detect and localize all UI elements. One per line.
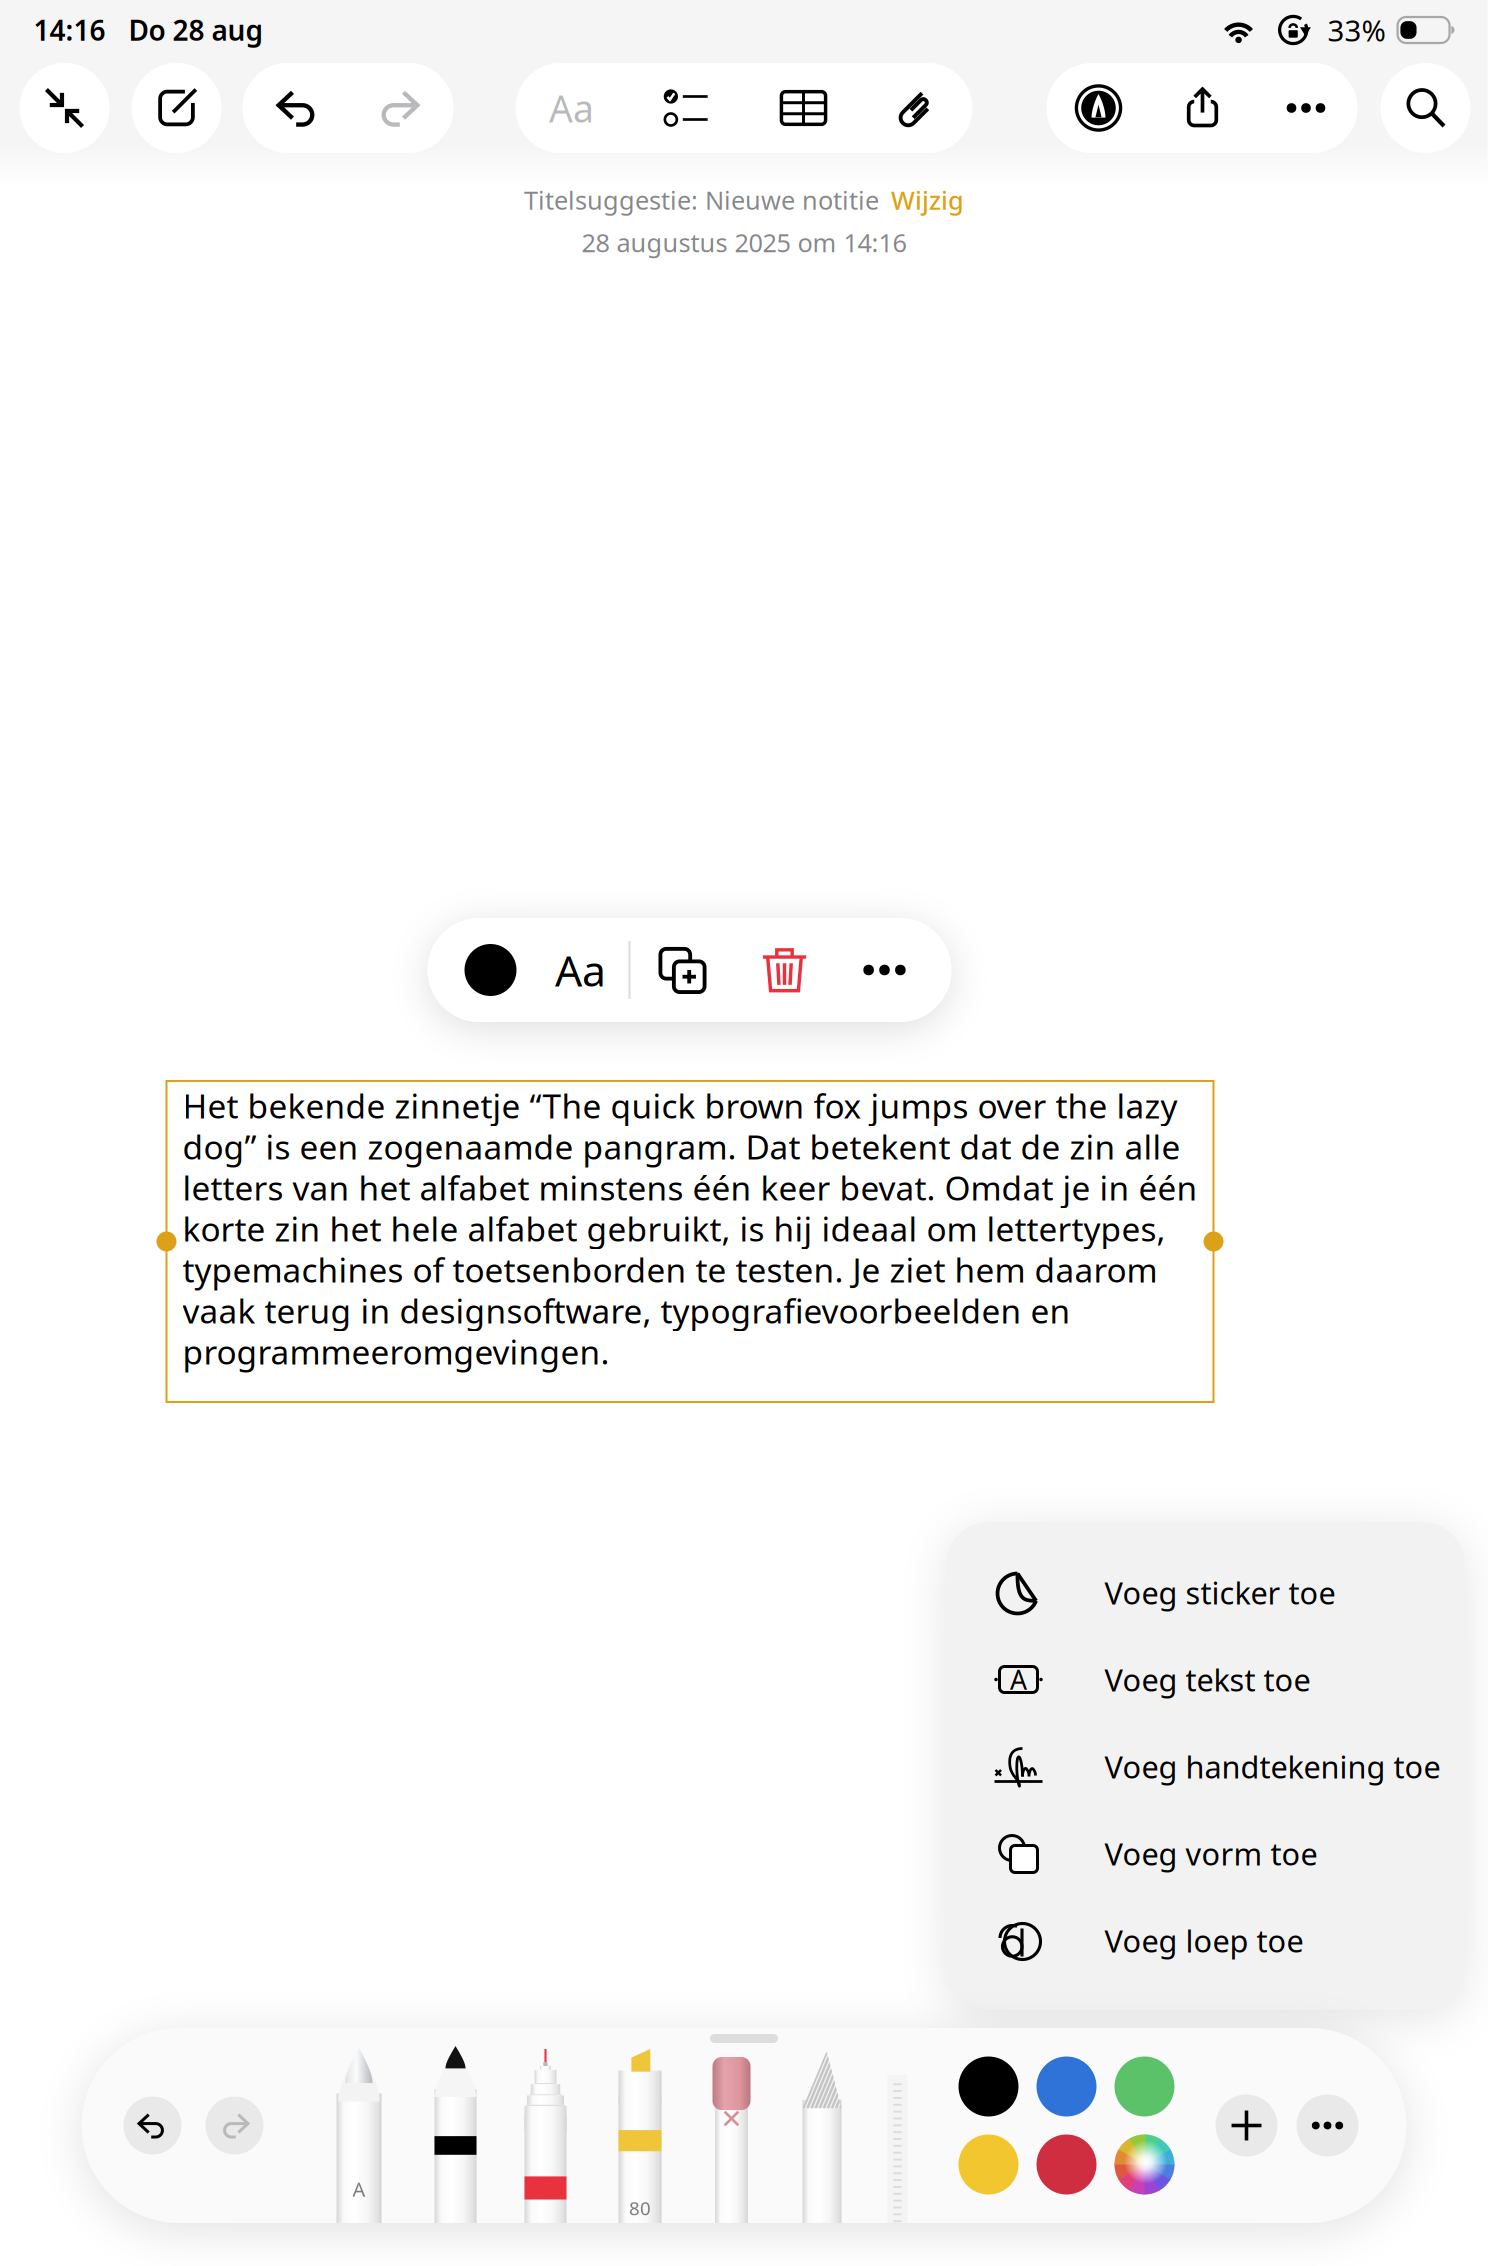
button[interactable]: Fountain pen — [336, 2028, 381, 2242]
button[interactable]: Markup — [1046, 63, 1150, 153]
staticText: Voeg sticker toe — [1104, 1572, 1335, 1613]
staticText: Voeg loep toe — [1104, 1920, 1303, 1961]
button[interactable]: Delete — [734, 918, 834, 1022]
staticText: Het bekende zinnetje “The quick brown fo… — [182, 1083, 1177, 1128]
button[interactable]: Attach — [861, 63, 972, 153]
staticText: Voeg tekst toe — [1104, 1659, 1310, 1700]
staticText: A — [352, 2176, 365, 2202]
button[interactable]: Color — [958, 2056, 1018, 2116]
button[interactable]: Color — [448, 918, 532, 1022]
button[interactable]: Pen — [434, 2028, 476, 2242]
staticText: korte zin het hele alfabet gebruikt, is … — [182, 1206, 1165, 1251]
staticText: Wijzig — [891, 183, 964, 217]
button[interactable]: Add color — [1215, 2094, 1277, 2156]
staticText: dog” is een zogenaamde pangram. Dat bete… — [182, 1124, 1180, 1169]
button[interactable]: Redo — [205, 2096, 263, 2154]
button[interactable]: Color — [1036, 2134, 1096, 2194]
button[interactable]: Crayon — [802, 2028, 841, 2242]
button[interactable]: Color wheel — [1114, 2134, 1174, 2194]
staticText: vaak terug in designsoftware, typografie… — [182, 1288, 1070, 1333]
staticText: Aa — [555, 942, 606, 998]
button[interactable]: New note — [131, 63, 221, 153]
button[interactable]: Duplicate — [630, 918, 734, 1022]
button[interactable]: Search — [1380, 63, 1470, 153]
button[interactable]: A — [946, 1636, 1464, 1723]
button[interactable]: Voeg vorm toe — [946, 1810, 1464, 1897]
button[interactable]: Voeg loep toe — [946, 1897, 1464, 1984]
staticText: 33% — [1328, 10, 1386, 49]
button[interactable]: Undo — [248, 63, 348, 153]
button[interactable]: Voeg sticker toe — [946, 1549, 1464, 1636]
button[interactable]: More — [834, 918, 934, 1022]
staticText: letters van het alfabet minstens één kee… — [182, 1165, 1197, 1210]
button[interactable]: More — [1254, 63, 1357, 153]
staticText: A — [1010, 1662, 1027, 1697]
staticText: 14:16 — [33, 11, 105, 49]
staticText: Titelsuggestie: Nieuwe notitie — [524, 183, 879, 217]
button[interactable]: Eraser — [712, 2028, 750, 2242]
staticText: typemachines of toetsenborden te testen.… — [182, 1247, 1157, 1292]
button[interactable]: Wijzig — [891, 183, 964, 217]
button[interactable]: Voeg handtekening toe — [946, 1723, 1464, 1810]
staticText: Voeg handtekening toe — [1104, 1746, 1440, 1787]
button[interactable]: Highlighter — [618, 2028, 661, 2242]
button[interactable]: Color — [958, 2134, 1018, 2194]
staticText: programmeeromgevingen. — [182, 1329, 609, 1374]
staticText: 28 augustus 2025 om 14:16 — [581, 226, 906, 259]
staticText: Voeg vorm toe — [1104, 1833, 1317, 1874]
staticText: Aa — [549, 83, 594, 133]
button[interactable]: Checklist — [627, 63, 745, 153]
button[interactable]: Ruler — [887, 2028, 907, 2240]
button[interactable]: More options — [1296, 2094, 1358, 2156]
button[interactable]: Color — [1036, 2056, 1096, 2116]
button[interactable]: Technical pen — [524, 2028, 566, 2242]
staticText: Do 28 aug — [128, 11, 263, 49]
button[interactable]: Table — [745, 63, 861, 153]
staticText: 80 — [629, 2196, 651, 2220]
button[interactable]: Collapse — [19, 63, 109, 153]
button[interactable]: Redo — [348, 63, 448, 153]
button[interactable]: Color — [1114, 2056, 1174, 2116]
button[interactable]: Undo — [123, 2096, 181, 2154]
button[interactable]: Aa — [532, 918, 628, 1022]
button[interactable]: Share — [1150, 63, 1254, 153]
button[interactable]: Aa — [515, 63, 627, 153]
